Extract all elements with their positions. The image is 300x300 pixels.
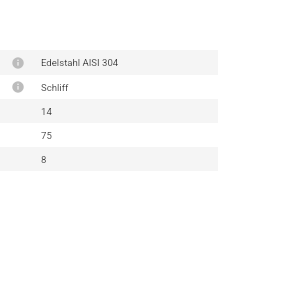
other: Info bbox=[12, 57, 24, 69]
button[interactable]: Info bbox=[0, 50, 218, 75]
staticText: 75 bbox=[41, 130, 52, 141]
staticText: 8 bbox=[41, 154, 47, 165]
button[interactable]: 8 bbox=[0, 147, 218, 171]
other: Info bbox=[12, 81, 24, 93]
button[interactable]: 75 bbox=[0, 123, 218, 147]
button[interactable]: 14 bbox=[0, 99, 218, 123]
button[interactable]: Info bbox=[0, 75, 218, 99]
staticText: Schliff bbox=[41, 82, 69, 93]
staticText: 14 bbox=[41, 106, 52, 117]
staticText: Edelstahl AISI 304 bbox=[41, 57, 119, 68]
